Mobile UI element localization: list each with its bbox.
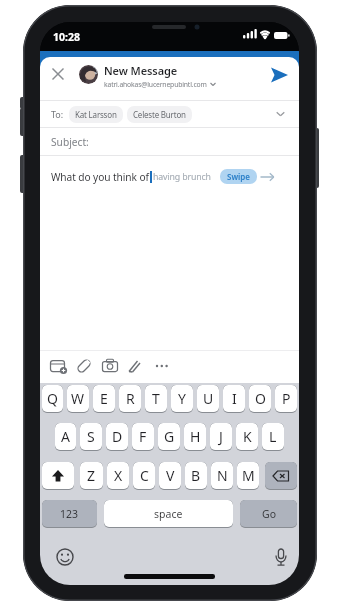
button[interactable]: B <box>185 462 207 490</box>
staticText: X <box>114 466 123 485</box>
button[interactable]: E <box>93 385 115 413</box>
staticText: New Message <box>104 63 178 78</box>
staticText: P <box>282 389 291 408</box>
staticText: G <box>164 427 175 446</box>
button[interactable] <box>50 66 66 82</box>
staticText: A <box>61 427 70 446</box>
staticText: U <box>203 389 214 408</box>
staticText: J <box>219 427 223 446</box>
button[interactable]: P <box>275 385 297 413</box>
button[interactable]: Y <box>171 385 193 413</box>
button[interactable]: Subject: <box>40 128 299 155</box>
button[interactable]: T <box>145 385 167 413</box>
staticText: H <box>190 427 201 446</box>
button[interactable]: S <box>80 423 102 451</box>
staticText: katri.ahokas@lucernepubintl.com <box>104 80 207 89</box>
staticText: having brunch <box>153 171 211 183</box>
button[interactable]: N <box>211 462 233 490</box>
button[interactable]: I <box>223 385 245 413</box>
button[interactable]: Go <box>240 500 297 528</box>
staticText: To: <box>51 108 64 120</box>
button[interactable]: K <box>236 423 258 451</box>
staticText: Go <box>262 507 276 521</box>
button[interactable]: G <box>158 423 180 451</box>
button[interactable]: Swipe <box>220 169 257 184</box>
button[interactable]: D <box>106 423 128 451</box>
staticText: Swipe <box>227 171 250 182</box>
staticText: F <box>139 427 147 446</box>
button[interactable]: M <box>237 462 259 490</box>
button[interactable] <box>265 462 297 490</box>
button[interactable]: A <box>55 423 76 451</box>
staticText: 123 <box>60 507 79 521</box>
staticText: V <box>166 466 175 485</box>
button[interactable]: U <box>197 385 219 413</box>
staticText: N <box>217 466 228 485</box>
button[interactable]: V <box>159 462 181 490</box>
staticText: 10:28 <box>53 30 80 44</box>
button[interactable] <box>118 351 144 383</box>
button[interactable] <box>268 64 290 86</box>
button[interactable]: Kat Larsson <box>69 106 123 123</box>
button[interactable]: To: <box>40 101 299 127</box>
staticText: B <box>191 466 201 485</box>
staticText: E <box>100 389 108 408</box>
staticText: R <box>126 389 135 408</box>
button[interactable]: H <box>184 423 206 451</box>
staticText: S <box>87 427 95 446</box>
staticText: Kat Larsson <box>75 109 117 120</box>
staticText: Subject: <box>51 135 89 149</box>
button[interactable] <box>40 351 66 383</box>
button[interactable]: J <box>210 423 232 451</box>
button[interactable]: L <box>262 423 284 451</box>
button[interactable] <box>50 547 80 577</box>
staticText: Celeste Burton <box>133 109 186 120</box>
staticText: Z <box>87 466 96 485</box>
button[interactable]: F <box>132 423 154 451</box>
button[interactable]: Q <box>42 385 63 413</box>
button[interactable]: O <box>249 385 271 413</box>
button[interactable]: Celeste Burton <box>127 106 192 123</box>
staticText: W <box>71 389 85 408</box>
button[interactable] <box>266 547 296 577</box>
staticText: space <box>154 507 183 521</box>
staticText: Y <box>178 389 186 408</box>
button[interactable]: X <box>107 462 129 490</box>
staticText: C <box>140 466 149 485</box>
button[interactable]: C <box>133 462 155 490</box>
staticText: M <box>242 466 255 485</box>
button[interactable]: space <box>104 500 233 528</box>
button[interactable] <box>66 351 92 383</box>
staticText: K <box>243 427 252 446</box>
button[interactable]: W <box>67 385 89 413</box>
button[interactable] <box>92 351 118 383</box>
staticText: Q <box>47 389 58 408</box>
staticText: What do you think of <box>51 170 149 184</box>
staticText: T <box>152 389 160 408</box>
staticText: D <box>112 427 123 446</box>
button[interactable]: 123 <box>42 500 97 528</box>
button[interactable] <box>42 462 74 490</box>
staticText: L <box>269 427 277 446</box>
button[interactable]: Z <box>80 462 103 490</box>
staticText: O <box>255 389 266 408</box>
staticText: I <box>232 389 237 408</box>
button[interactable]: R <box>119 385 141 413</box>
button[interactable] <box>144 351 170 383</box>
